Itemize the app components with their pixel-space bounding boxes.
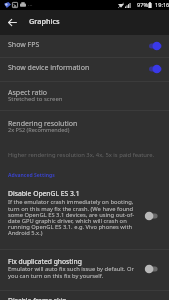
staticText: 19:16 [155, 1, 169, 9]
staticText: Disable frame skip [8, 296, 67, 300]
button[interactable]: Show device information [0, 57, 169, 81]
staticText: Advanced Settings [8, 172, 55, 179]
staticText: 2x PS2 (Recommended) [8, 126, 70, 134]
staticText: 97% [137, 1, 149, 9]
staticText: Aspect ratio [8, 88, 48, 98]
staticText: Graphics [29, 16, 60, 26]
staticText: Fix duplicated ghosting [8, 257, 82, 266]
button[interactable]: Disable OpenGL ES 3.1 [0, 182, 169, 249]
button[interactable]: Fix duplicated ghosting [0, 249, 169, 290]
button[interactable]: Aspect ratio [0, 81, 169, 111]
button[interactable]: Show FPS [0, 35, 169, 57]
button[interactable]: Rendering resolution [0, 111, 169, 147]
staticText: Rendering resolution [8, 119, 78, 129]
staticText: Higher rendering resolution 3x, 4x, 5x i… [8, 151, 155, 159]
staticText: Disable OpenGL ES 3.1 [8, 189, 80, 198]
button[interactable]: Advanced Settings [0, 166, 169, 182]
staticText: ··· [28, 1, 33, 8]
staticText: Show FPS [8, 40, 40, 50]
button[interactable]: Disable frame skip [0, 290, 169, 300]
button[interactable]: Navigate up [0, 10, 24, 34]
staticText: Emulator will auto fix such issue by def… [8, 265, 141, 280]
staticText: Show device information [8, 63, 90, 73]
staticText: If the emulator crash immediately on boo… [8, 198, 141, 237]
staticText: Stretched to screen [8, 95, 63, 103]
